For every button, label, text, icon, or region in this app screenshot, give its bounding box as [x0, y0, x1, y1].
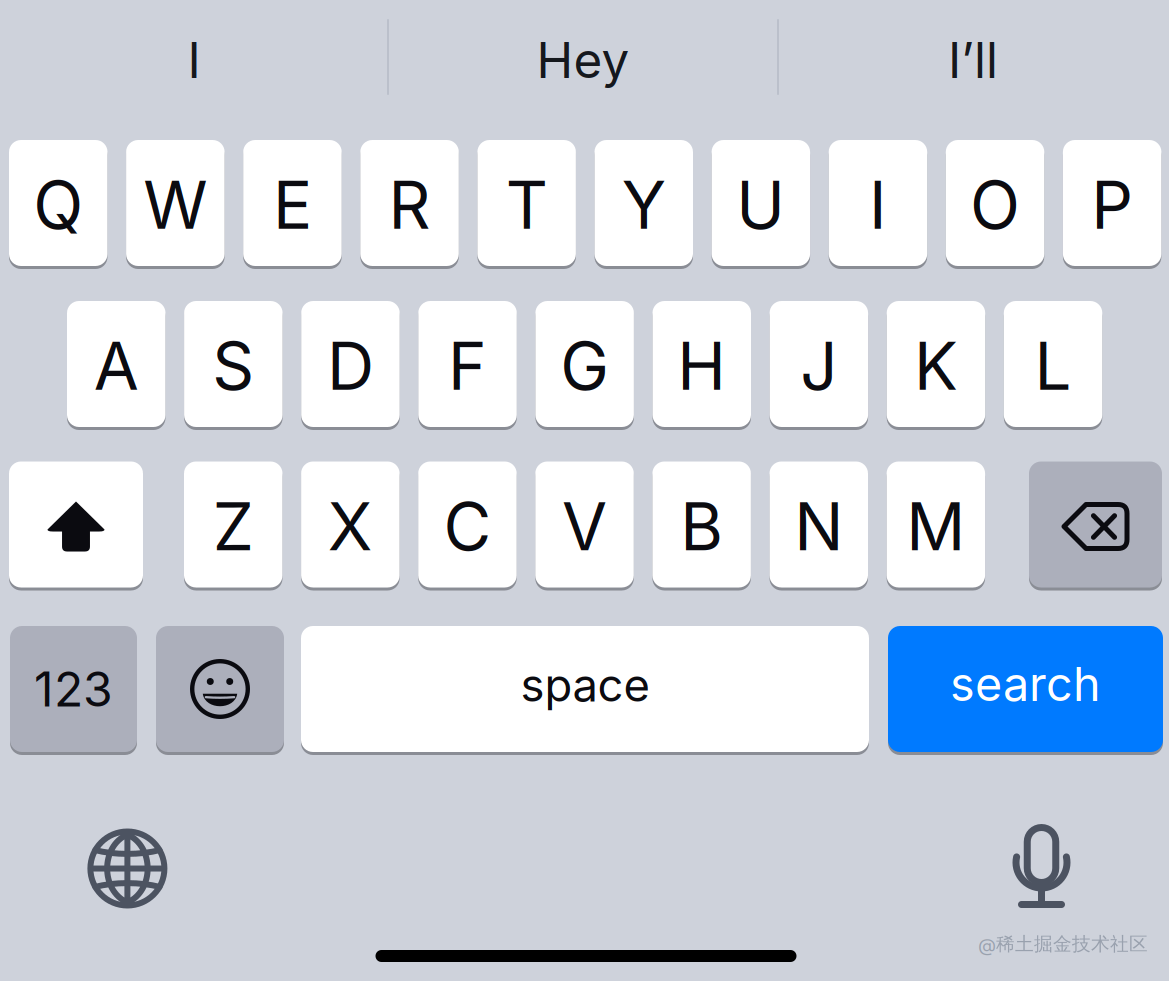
staticText: D: [327, 326, 374, 405]
staticText: K: [914, 326, 958, 405]
staticText: I: [187, 30, 200, 90]
staticText: Y: [622, 165, 666, 244]
button[interactable]: N: [769, 461, 868, 587]
button[interactable]: O: [946, 140, 1044, 266]
button[interactable]: Q: [9, 140, 107, 266]
staticText: N: [794, 487, 843, 566]
staticText: E: [273, 165, 312, 244]
staticText: C: [443, 487, 491, 566]
button[interactable]: A: [67, 301, 165, 427]
button[interactable]: Next keyboard: [62, 803, 192, 933]
button[interactable]: U: [712, 140, 810, 266]
staticText: X: [328, 487, 373, 566]
button[interactable]: search: [888, 626, 1163, 752]
button[interactable]: Dictation: [976, 801, 1106, 931]
staticText: V: [562, 487, 607, 566]
button[interactable]: C: [418, 461, 517, 587]
button[interactable]: X: [301, 461, 400, 587]
staticText: J: [800, 326, 837, 405]
button[interactable]: I: [0, 0, 388, 117]
button[interactable]: W: [126, 140, 225, 266]
button[interactable]: Y: [594, 140, 693, 266]
button[interactable]: space: [301, 626, 869, 752]
staticText: space: [520, 658, 649, 712]
button[interactable]: D: [301, 301, 400, 427]
button[interactable]: E: [243, 140, 342, 266]
staticText: W: [143, 165, 207, 244]
staticText: search: [950, 656, 1101, 712]
button[interactable]: I: [829, 140, 927, 266]
staticText: T: [506, 165, 548, 244]
staticText: Z: [213, 487, 254, 566]
staticText: P: [1091, 165, 1133, 244]
button[interactable]: Hey: [388, 0, 777, 117]
staticText: U: [736, 165, 785, 244]
staticText: H: [677, 326, 726, 405]
button[interactable]: I’ll: [778, 0, 1167, 117]
staticText: S: [212, 326, 254, 405]
staticText: I: [869, 165, 887, 244]
button[interactable]: P: [1063, 140, 1161, 266]
staticText: M: [906, 487, 965, 566]
button[interactable]: Shift: [9, 461, 143, 587]
staticText: R: [388, 165, 430, 244]
button[interactable]: F: [418, 301, 517, 427]
staticText: B: [680, 487, 723, 566]
button[interactable]: Delete: [1029, 461, 1162, 587]
staticText: O: [970, 165, 1020, 244]
staticText: Q: [33, 165, 83, 244]
button[interactable]: K: [887, 301, 985, 427]
button[interactable]: V: [535, 461, 634, 587]
staticText: G: [560, 326, 609, 405]
button[interactable]: B: [652, 461, 751, 587]
button[interactable]: Z: [184, 461, 282, 587]
staticText: Hey: [536, 30, 629, 90]
button[interactable]: M: [887, 461, 985, 587]
staticText: 123: [34, 660, 113, 718]
button[interactable]: S: [184, 301, 283, 427]
button[interactable]: J: [770, 301, 868, 427]
button[interactable]: H: [652, 301, 751, 427]
staticText: A: [94, 326, 139, 405]
button[interactable]: R: [360, 140, 459, 266]
button[interactable]: 123: [10, 626, 137, 752]
staticText: F: [448, 326, 487, 405]
button[interactable]: Emoji: [156, 626, 284, 752]
staticText: L: [1034, 326, 1071, 405]
button[interactable]: G: [535, 301, 634, 427]
button[interactable]: T: [477, 140, 576, 266]
staticText: @稀土掘金技术社区: [978, 932, 1148, 956]
staticText: I’ll: [948, 30, 998, 90]
button[interactable]: L: [1004, 301, 1102, 427]
